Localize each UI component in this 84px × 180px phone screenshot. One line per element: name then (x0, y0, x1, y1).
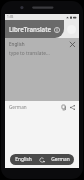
button[interactable]: Clear (68, 40, 76, 48)
staticText: English (15, 156, 32, 163)
button[interactable]: German (47, 154, 74, 165)
staticText: LibreTranslate (9, 25, 52, 33)
button[interactable]: Swap languages (37, 155, 47, 165)
button[interactable]: LibreTranslate (5, 20, 64, 38)
staticText: English (9, 41, 68, 47)
button[interactable]: Info (52, 25, 61, 34)
staticText: German (9, 104, 59, 110)
button[interactable]: Copy (59, 103, 67, 111)
button[interactable]: English (10, 154, 37, 165)
button[interactable]: type to translate... (5, 49, 79, 57)
button[interactable]: Share (68, 103, 76, 111)
staticText: 1:35 (7, 15, 14, 19)
staticText: German (51, 156, 70, 163)
